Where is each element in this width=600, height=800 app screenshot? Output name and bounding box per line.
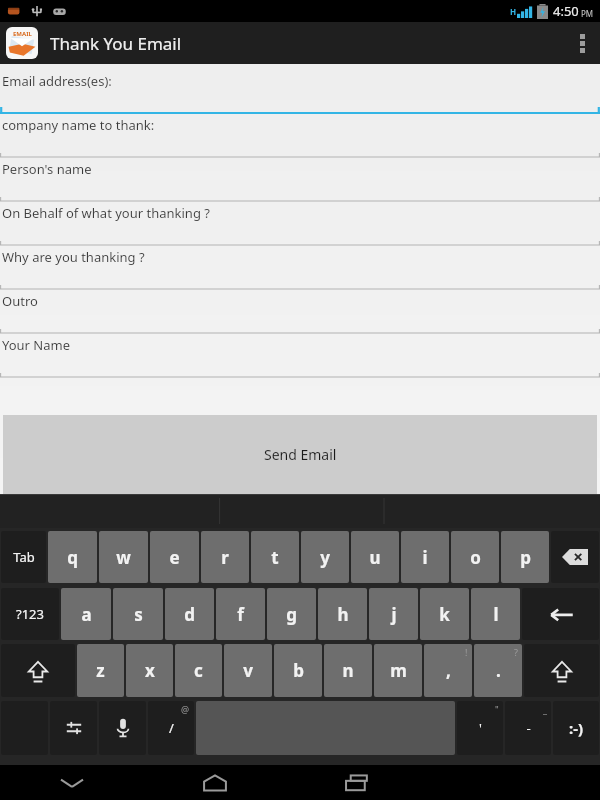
button[interactable]: c [175,644,222,697]
staticText: m [390,659,407,682]
button[interactable]: p [501,531,549,583]
button[interactable]: q [48,531,97,583]
staticText: EMAIL [13,30,32,38]
button[interactable]: k [420,588,469,640]
button[interactable]: Recent apps [286,765,429,800]
staticText: Person's name [2,160,92,178]
button[interactable]: l [471,588,520,640]
staticText: _ [543,703,547,715]
button[interactable]: u [351,531,399,583]
button[interactable]: o [451,531,499,583]
button[interactable]: d [165,588,214,640]
staticText: ? [514,646,518,658]
button[interactable]: ?123 [1,588,59,640]
button[interactable]: Shift [1,644,75,697]
button[interactable]: Keyboard settings [50,701,97,755]
staticText: w [116,546,131,569]
staticText: f [237,603,244,626]
staticText: Tab [13,548,35,566]
button[interactable]: Send Email [3,415,597,494]
button[interactable]: f [216,588,265,640]
staticText: Send Email [264,445,337,464]
button[interactable]: ' [457,701,503,755]
button[interactable]: x [126,644,173,697]
staticText: PM [581,8,594,19]
button[interactable]: z [77,644,124,697]
staticText: @ [181,703,190,715]
staticText: n [342,659,354,682]
staticText: ! [465,646,468,658]
staticText: q [67,546,78,569]
button[interactable]: n [324,644,372,697]
button[interactable]: t [251,531,299,583]
button[interactable]: Why are you thanking ? [0,246,600,290]
button[interactable]: b [274,644,322,697]
button[interactable]: r [201,531,249,583]
staticText: k [439,603,450,626]
button[interactable]: Person's name [0,158,600,202]
staticText: h [337,603,349,626]
staticText: ' [479,719,482,737]
staticText: Thank You Email [50,32,182,55]
button[interactable]: company name to thank: [0,114,600,158]
staticText: :-) [569,718,584,738]
button[interactable]: Voice input [99,701,146,755]
button[interactable]: , [424,644,472,697]
button[interactable]: Hide keyboard [0,765,143,800]
staticText: , [446,659,451,682]
button[interactable]: y [301,531,349,583]
staticText: On Behalf of what your thanking ? [2,204,210,222]
staticText: company name to thank: [2,116,155,134]
button[interactable]: g [267,588,316,640]
button[interactable]: Email address(es): [0,70,600,114]
staticText: o [470,546,481,569]
button[interactable]: v [224,644,272,697]
button[interactable]: j [369,588,418,640]
staticText: H [510,6,517,17]
button[interactable]: Enter [522,588,599,640]
button[interactable]: a [61,588,111,640]
staticText: Email address(es): [2,72,112,90]
staticText: / [169,719,174,737]
button[interactable]: Your Name [0,334,600,378]
button[interactable]: w [99,531,148,583]
staticText: . [496,659,501,682]
button[interactable]: e [150,531,199,583]
button[interactable]: Emoji [553,701,599,755]
staticText: u [369,546,381,569]
staticText: j [391,603,397,626]
staticText: g [286,603,297,626]
button[interactable]: / [148,701,194,755]
staticText: b [293,659,304,682]
staticText: - [526,719,531,737]
staticText: i [422,546,428,569]
button[interactable]: More options [564,22,600,64]
button[interactable]: Home [143,765,286,800]
staticText: " [495,703,499,715]
staticText: v [243,659,253,682]
button[interactable]: s [113,588,163,640]
button[interactable]: Tab [1,531,46,583]
staticText: a [81,603,92,626]
button[interactable]: m [374,644,422,697]
staticText: e [169,546,180,569]
staticText: Why are you thanking ? [2,248,145,266]
button[interactable]: On Behalf of what your thanking ? [0,202,600,246]
button[interactable]: Shift [524,644,599,697]
staticText: r [221,546,229,569]
button[interactable]: Outro [0,290,600,334]
staticText: c [194,659,203,682]
button[interactable]: . [474,644,522,697]
button[interactable]: i [401,531,449,583]
staticText: y [320,546,330,569]
staticText: ?123 [16,605,44,623]
button[interactable]: - [505,701,551,755]
button[interactable]: h [318,588,367,640]
staticText: l [493,603,499,626]
staticText: p [520,546,531,569]
staticText: Your Name [2,336,71,354]
button[interactable]: Backspace [551,531,599,583]
staticText: 4:50 [553,2,579,20]
